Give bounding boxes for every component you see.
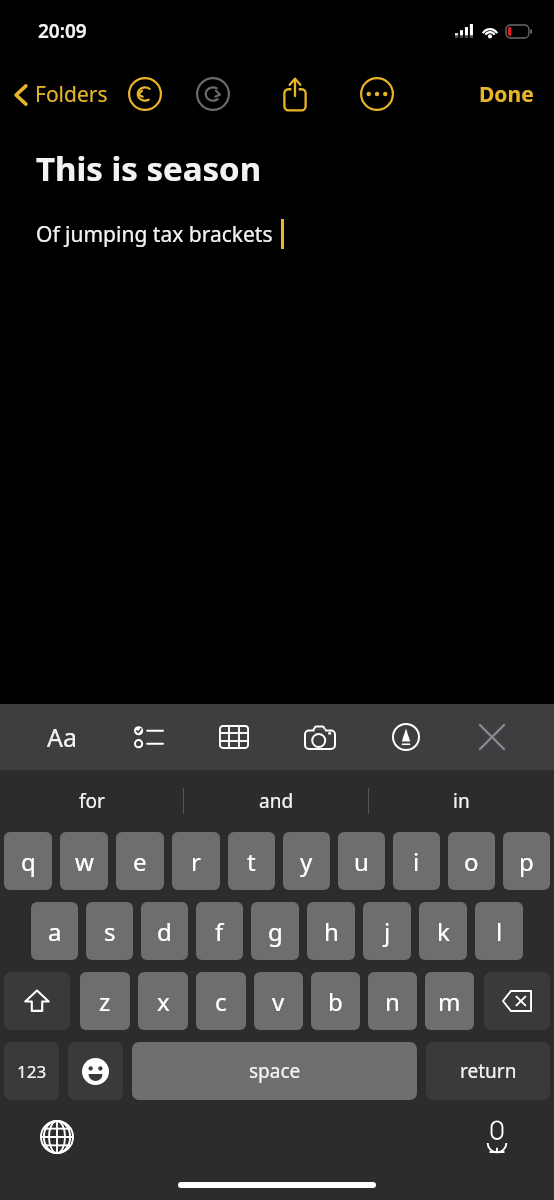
staticText: t — [247, 845, 256, 878]
staticText: m — [438, 985, 461, 1018]
staticText: v — [272, 985, 285, 1018]
button[interactable]: u — [338, 832, 385, 890]
button[interactable]: q — [4, 832, 52, 890]
button[interactable]: Emoji — [68, 1042, 123, 1100]
button[interactable]: a — [31, 902, 78, 960]
button[interactable]: l — [475, 902, 523, 960]
button[interactable]: n — [368, 972, 417, 1030]
button[interactable]: Share — [273, 72, 317, 116]
button[interactable]: Redo — [191, 72, 235, 116]
staticText: space — [249, 1058, 301, 1084]
button[interactable]: p — [503, 832, 550, 890]
button[interactable]: Markup — [382, 713, 430, 761]
button[interactable]: Table — [210, 713, 258, 761]
button[interactable]: m — [425, 972, 474, 1030]
staticText: i — [413, 845, 420, 878]
staticText: l — [496, 915, 503, 948]
staticText: e — [133, 845, 147, 878]
button[interactable]: f — [196, 902, 243, 960]
button[interactable]: More — [355, 72, 399, 116]
staticText: b — [328, 985, 343, 1018]
button[interactable]: g — [251, 902, 299, 960]
button[interactable]: k — [419, 902, 467, 960]
button[interactable]: for — [0, 770, 184, 832]
staticText: 123 — [17, 1060, 47, 1083]
staticText: h — [324, 915, 339, 948]
button[interactable]: i — [393, 832, 440, 890]
button[interactable]: and — [184, 770, 369, 832]
button[interactable]: d — [141, 902, 188, 960]
staticText: for — [79, 788, 105, 814]
button[interactable]: return — [426, 1042, 550, 1100]
button[interactable]: s — [86, 902, 133, 960]
staticText: This is season — [36, 146, 262, 191]
staticText: z — [99, 985, 111, 1018]
staticText: Aa — [47, 720, 78, 754]
staticText: Folders — [35, 80, 108, 109]
staticText: k — [437, 915, 450, 948]
button[interactable]: b — [311, 972, 360, 1030]
button[interactable]: j — [363, 902, 411, 960]
button[interactable]: y — [283, 832, 330, 890]
button[interactable]: c — [196, 972, 246, 1030]
button[interactable]: Folders — [10, 74, 112, 115]
staticText: w — [75, 845, 94, 878]
button[interactable]: x — [138, 972, 188, 1030]
staticText: j — [384, 915, 391, 948]
staticText: q — [21, 845, 36, 878]
staticText: x — [157, 985, 170, 1018]
staticText: 20:09 — [38, 18, 87, 44]
button[interactable]: Done — [473, 74, 540, 115]
button[interactable]: o — [448, 832, 495, 890]
staticText: d — [157, 915, 172, 948]
button[interactable]: e — [116, 832, 164, 890]
button[interactable]: Checklist — [124, 713, 172, 761]
staticText: f — [215, 915, 224, 948]
staticText: in — [453, 788, 470, 814]
staticText: and — [259, 788, 294, 814]
button[interactable]: Change keyboard — [34, 1114, 80, 1160]
button[interactable]: Backspace — [484, 972, 550, 1030]
button[interactable]: in — [369, 770, 554, 832]
button[interactable]: r — [172, 832, 220, 890]
staticText: return — [460, 1058, 517, 1084]
button[interactable]: h — [307, 902, 355, 960]
button[interactable]: t — [228, 832, 275, 890]
staticText: Done — [479, 80, 534, 109]
button[interactable]: Close keyboard — [468, 713, 516, 761]
staticText: o — [464, 845, 479, 878]
staticText: s — [104, 915, 116, 948]
staticText: u — [354, 845, 369, 878]
staticText: p — [519, 845, 534, 878]
button[interactable]: v — [254, 972, 303, 1030]
staticText: Of jumping tax brackets — [36, 220, 273, 249]
staticText: c — [215, 985, 227, 1018]
button[interactable]: Format — [38, 713, 86, 761]
staticText: y — [300, 845, 313, 878]
staticText: a — [48, 915, 62, 948]
button[interactable]: Dictate — [474, 1114, 520, 1160]
button[interactable]: Camera — [296, 713, 344, 761]
button[interactable]: w — [60, 832, 108, 890]
button[interactable]: Undo — [123, 72, 167, 116]
button[interactable]: 123 — [4, 1042, 59, 1100]
button[interactable]: space — [132, 1042, 417, 1100]
button[interactable]: z — [80, 972, 130, 1030]
staticText: g — [268, 915, 283, 948]
staticText: n — [385, 985, 400, 1018]
button[interactable]: Shift — [4, 972, 70, 1030]
staticText: r — [191, 845, 201, 878]
